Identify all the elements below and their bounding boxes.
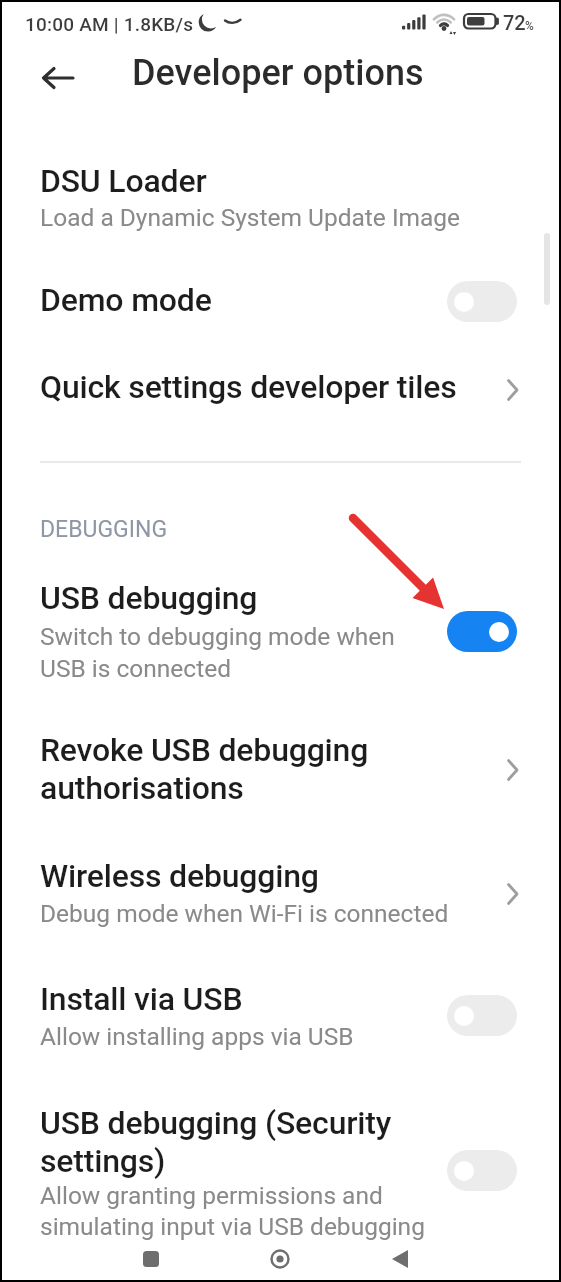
button[interactable] — [0, 148, 561, 244]
staticText: USB debugging (Security — [40, 1104, 392, 1142]
staticText: DSU Loader — [40, 162, 207, 200]
staticText: 10:00 AM | 1.8KB/s — [25, 13, 194, 35]
staticText: settings) — [40, 1142, 166, 1180]
button[interactable] — [250, 1236, 310, 1282]
staticText: Quick settings developer tiles — [40, 368, 457, 406]
button[interactable] — [447, 611, 517, 652]
button[interactable] — [121, 1236, 181, 1282]
staticText: Debug mode when Wi-Fi is connected — [40, 899, 449, 928]
button[interactable] — [28, 56, 86, 100]
staticText: Switch to debugging mode when — [40, 622, 395, 651]
staticText: USB debugging — [40, 579, 258, 617]
staticText: Developer options — [132, 52, 424, 94]
button[interactable] — [0, 845, 561, 945]
staticText: 72 — [503, 11, 526, 34]
staticText: Revoke USB debugging — [40, 731, 369, 769]
staticText: Demo mode — [40, 281, 212, 319]
button[interactable] — [0, 355, 561, 431]
staticText: simulating input via USB debugging — [40, 1212, 425, 1241]
staticText: Wireless debugging — [40, 857, 319, 895]
button[interactable] — [0, 262, 561, 342]
button[interactable] — [0, 566, 561, 696]
staticText: Load a Dynamic System Update Image — [40, 203, 461, 232]
staticText: USB is connected — [40, 654, 231, 683]
button[interactable] — [447, 281, 517, 322]
staticText: Install via USB — [40, 980, 243, 1018]
button[interactable] — [0, 718, 561, 822]
staticText: Allow installing apps via USB — [40, 1022, 354, 1051]
button[interactable] — [447, 1150, 517, 1191]
button[interactable] — [447, 995, 517, 1036]
button[interactable] — [370, 1236, 430, 1282]
staticText: DEBUGGING — [40, 516, 168, 543]
staticText: authorisations — [40, 769, 244, 807]
button[interactable] — [0, 1088, 561, 1246]
staticText: Allow granting permissions and — [40, 1181, 383, 1210]
staticText: % — [525, 19, 534, 33]
button[interactable] — [0, 966, 561, 1064]
